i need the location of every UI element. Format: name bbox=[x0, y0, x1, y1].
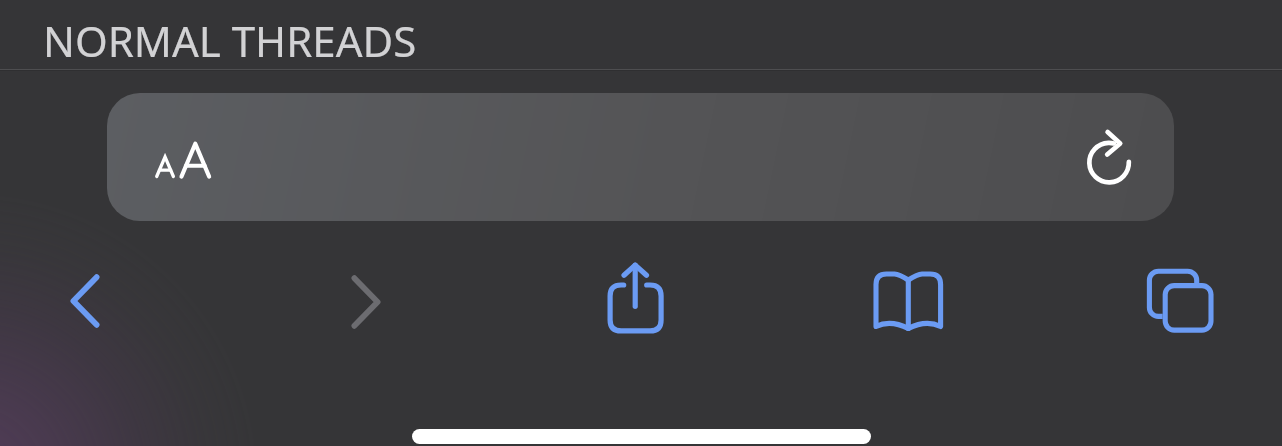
button[interactable]: Back bbox=[41, 257, 129, 345]
button[interactable]: NORMAL THREADS bbox=[43, 12, 417, 69]
button[interactable]: Text size bbox=[107, 93, 1174, 221]
button[interactable]: Reload bbox=[1072, 128, 1144, 200]
staticText: NORMAL THREADS bbox=[43, 12, 417, 69]
button[interactable]: Share bbox=[591, 249, 679, 337]
button[interactable]: Forward bbox=[322, 258, 410, 346]
button[interactable]: Tabs bbox=[1136, 250, 1224, 338]
button[interactable]: Text size bbox=[151, 128, 223, 188]
button[interactable]: Bookmarks bbox=[864, 250, 952, 338]
